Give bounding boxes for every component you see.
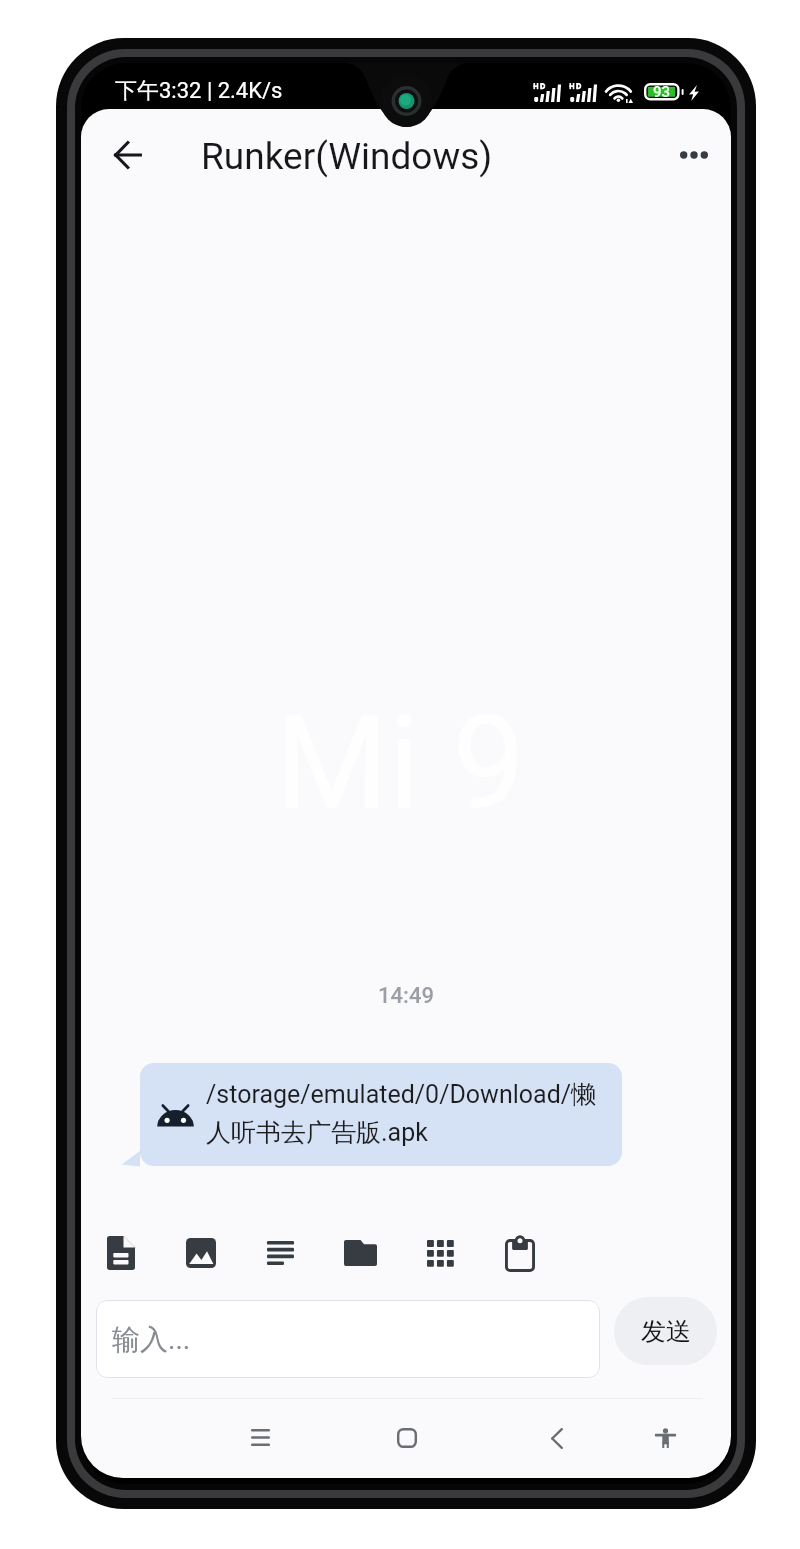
button[interactable]: 发送: [614, 1297, 717, 1365]
staticText: /storage/emulated/0/Download/懒人听书去广告版.ap…: [206, 1079, 606, 1148]
button[interactable]: Accessibility: [625, 1405, 705, 1471]
staticText: Runker(Windows): [201, 135, 493, 178]
button[interactable]: Text: [254, 1227, 306, 1279]
staticText: 14:49: [81, 983, 731, 1009]
button[interactable]: Image: [175, 1227, 227, 1279]
button[interactable]: 输入...: [96, 1300, 600, 1378]
staticText: 输入...: [112, 1322, 191, 1357]
button[interactable]: Back: [517, 1405, 597, 1471]
button[interactable]: /storage/emulated/0/Download/懒人听书去广告版.ap…: [140, 1063, 622, 1166]
button[interactable]: Apps: [414, 1227, 466, 1279]
button[interactable]: Home: [367, 1405, 447, 1471]
button[interactable]: Menu: [220, 1405, 300, 1471]
staticText: 下午3:32 | 2.4K/s: [115, 77, 283, 105]
button[interactable]: Document: [95, 1227, 147, 1279]
staticText: 发送: [641, 1316, 691, 1347]
button[interactable]: Back: [96, 124, 158, 186]
button[interactable]: More options: [663, 124, 725, 186]
button[interactable]: Folder: [334, 1227, 386, 1279]
staticText: 93: [653, 83, 671, 101]
button[interactable]: Clipboard: [494, 1227, 546, 1279]
